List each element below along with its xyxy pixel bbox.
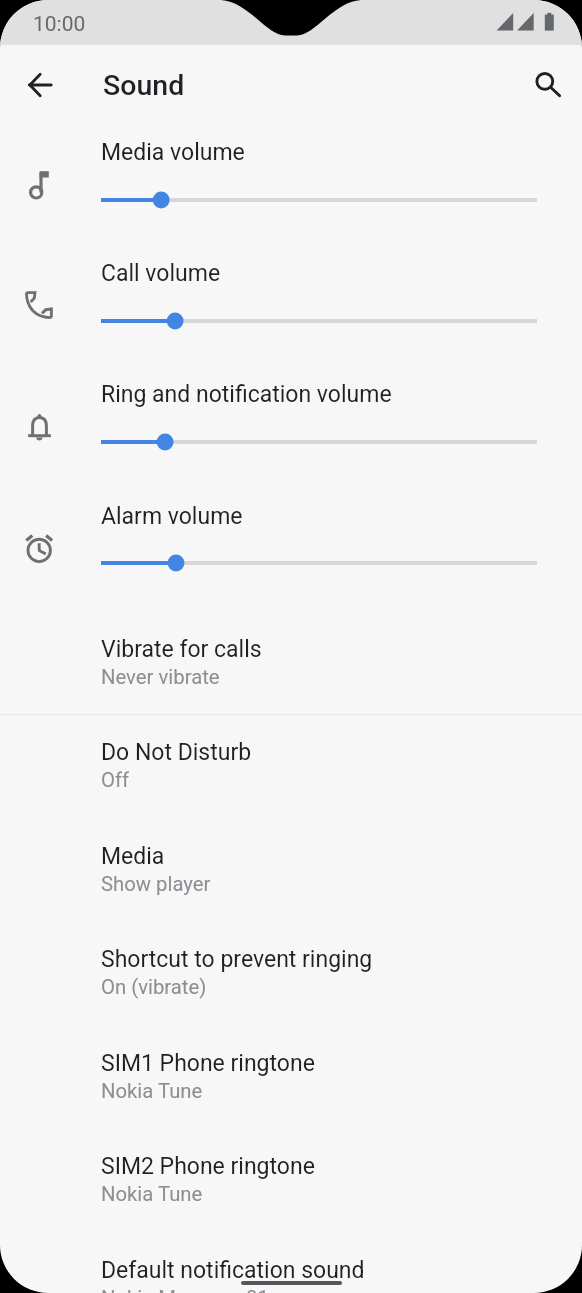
staticText: Vibrate for calls [101, 636, 262, 663]
other: Signal and battery status [494, 12, 556, 32]
button[interactable]: Back [14, 59, 66, 111]
other: Call volume [23, 289, 55, 321]
staticText: Call volume [101, 260, 221, 287]
staticText: Show player [101, 872, 211, 896]
button[interactable]: Ring volume [0, 361, 582, 464]
staticText: Nokia Message 01 [101, 1286, 269, 1293]
button[interactable]: Search [521, 60, 573, 112]
staticText: Shortcut to prevent ringing [101, 946, 373, 973]
button[interactable]: Media volume [0, 119, 582, 222]
button[interactable]: Call volume [0, 240, 582, 343]
staticText: SIM2 Phone ringtone [101, 1153, 315, 1180]
staticText: Nokia Tune [101, 1182, 203, 1206]
staticText: Nokia Tune [101, 1079, 203, 1103]
staticText: Media volume [101, 139, 245, 166]
staticText: SIM1 Phone ringtone [101, 1050, 315, 1077]
button[interactable]: SIM2 Phone ringtone [0, 1136, 582, 1232]
staticText: Default notification sound [101, 1257, 365, 1284]
button[interactable]: Vibrate for calls [0, 619, 582, 715]
button[interactable]: Do Not Disturb [0, 722, 582, 818]
staticText: On (vibrate) [101, 975, 207, 999]
staticText: Sound [103, 69, 185, 102]
staticText: Never vibrate [101, 665, 220, 689]
staticText: Ring and notification volume [101, 381, 392, 408]
staticText: 10:00 [33, 12, 86, 37]
button[interactable]: Alarm volume [0, 483, 582, 585]
staticText: Off [101, 768, 130, 792]
staticText: Media [101, 843, 165, 870]
staticText: Alarm volume [101, 503, 243, 530]
button[interactable]: Default notification sound [0, 1240, 582, 1293]
button[interactable]: SIM1 Phone ringtone [0, 1033, 582, 1129]
button[interactable]: Media [0, 826, 582, 922]
button[interactable]: Home [241, 1281, 342, 1285]
other: Alarm volume [23, 532, 55, 564]
button[interactable]: Shortcut to prevent ringing [0, 929, 582, 1025]
staticText: Do Not Disturb [101, 739, 252, 766]
other: Media volume [23, 166, 55, 198]
other: Ring volume [23, 411, 55, 443]
